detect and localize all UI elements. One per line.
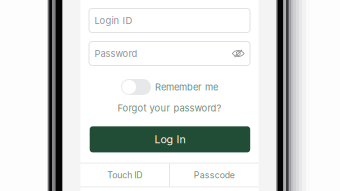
staticText: Passcode — [194, 170, 235, 180]
staticText: Log In — [154, 133, 185, 146]
button[interactable]: Touch ID — [80, 163, 169, 186]
button[interactable]: Remember me — [121, 79, 151, 95]
staticText: Remember me — [155, 81, 218, 93]
button[interactable]: Log In — [90, 126, 250, 152]
staticText: Login ID — [94, 15, 132, 26]
staticText: Password — [94, 48, 137, 59]
staticText: Forgot your password? — [117, 102, 221, 114]
staticText: Touch ID — [107, 170, 142, 180]
button[interactable]: Passcode — [170, 163, 258, 186]
button[interactable]: Forgot your password? — [80, 101, 258, 115]
